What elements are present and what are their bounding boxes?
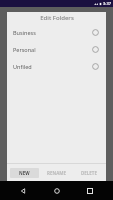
staticText: Business — [13, 29, 92, 36]
button[interactable]: Recent apps — [79, 181, 101, 200]
button[interactable]: NEW — [10, 168, 39, 178]
staticText: RENAME — [47, 170, 67, 176]
button[interactable]: Back — [12, 181, 34, 200]
staticText: Personal — [13, 46, 92, 53]
button[interactable]: DELETE — [74, 168, 103, 178]
button[interactable]: Home — [46, 181, 68, 200]
staticText: DELETE — [81, 170, 97, 176]
staticText: 3:37 — [103, 1, 111, 6]
button[interactable]: RENAME — [42, 168, 71, 178]
button[interactable]: Personal — [7, 41, 106, 58]
button[interactable]: Business — [7, 24, 106, 41]
button[interactable]: Unfiled — [7, 58, 106, 75]
staticText: Edit Folders — [40, 14, 74, 22]
staticText: NEW — [19, 170, 30, 176]
staticText: Unfiled — [13, 63, 92, 70]
